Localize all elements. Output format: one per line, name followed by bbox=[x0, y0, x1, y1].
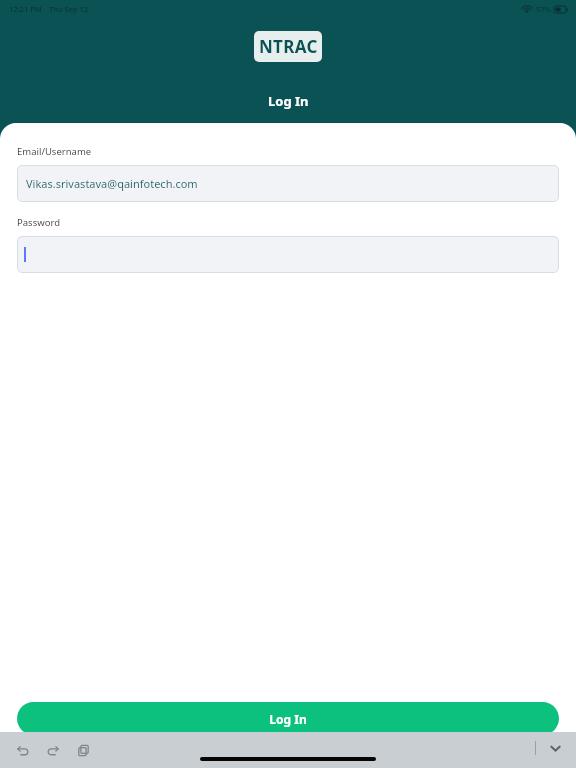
button[interactable] bbox=[17, 236, 559, 273]
button[interactable]: Paste bbox=[70, 737, 96, 763]
button[interactable]: Hide keyboard bbox=[544, 737, 566, 759]
staticText: Email/Username bbox=[17, 145, 92, 158]
button[interactable]: Redo bbox=[40, 737, 66, 763]
button[interactable]: Undo bbox=[10, 737, 36, 763]
staticText: Log In bbox=[269, 711, 307, 727]
staticText: Password bbox=[17, 216, 60, 229]
staticText: 12:21 PM bbox=[9, 4, 42, 14]
staticText: 57% bbox=[536, 4, 551, 14]
staticText: NTRAC bbox=[259, 35, 318, 58]
staticText: Log In bbox=[268, 92, 309, 110]
button[interactable]: Vikas.srivastava@qainfotech.com bbox=[17, 165, 559, 202]
staticText: Vikas.srivastava@qainfotech.com bbox=[26, 176, 198, 191]
staticText: Thu Sep 12 bbox=[49, 4, 89, 14]
button[interactable]: Log In bbox=[17, 702, 559, 735]
